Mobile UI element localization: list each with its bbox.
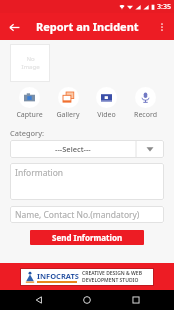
staticText: INFOCRATS [37, 271, 79, 281]
button[interactable]: Back [29, 290, 49, 310]
button[interactable]: Home [77, 290, 97, 310]
button[interactable]: Recent apps [126, 290, 146, 310]
button[interactable]: Gallery [51, 87, 85, 120]
staticText: Send Information [52, 232, 123, 243]
staticText: 3:35 [157, 2, 171, 12]
staticText: Information [15, 167, 64, 179]
button[interactable]: ---Select--- [10, 140, 164, 158]
staticText: No Image [21, 55, 40, 71]
button[interactable]: Back [4, 17, 24, 37]
staticText: Gallery [56, 110, 80, 120]
staticText: Report an Incident [36, 19, 139, 34]
button[interactable]: Send Information [30, 230, 144, 245]
button[interactable]: Capture [12, 87, 46, 120]
button[interactable]: Record [128, 87, 162, 120]
button[interactable]: INFOCRATS [0, 263, 174, 290]
button[interactable]: More options [153, 18, 171, 36]
button[interactable]: Information [10, 163, 164, 200]
staticText: CREATIVE DESIGN & WEB DEVELOPMENT STUDIO [82, 270, 142, 284]
button[interactable]: Name, Contact No.(mandatory) [10, 206, 164, 223]
staticText: Video [97, 110, 116, 120]
staticText: Record [134, 110, 157, 120]
staticText: Capture [16, 110, 43, 120]
staticText: Name, Contact No.(mandatory) [15, 209, 140, 221]
staticText: Category: [10, 128, 44, 138]
staticText: ---Select--- [55, 144, 91, 154]
button[interactable]: Video [89, 87, 123, 120]
